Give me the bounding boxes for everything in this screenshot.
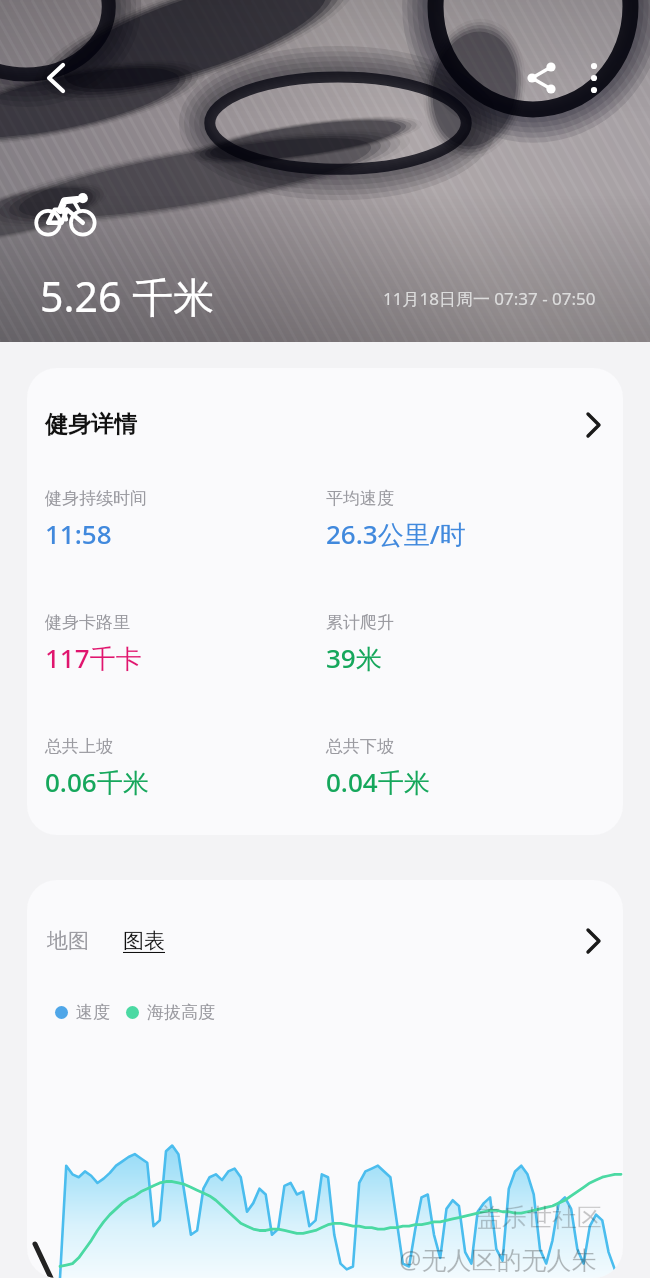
staticText: @无人区的无人朱 <box>399 1242 597 1276</box>
button[interactable]: Share <box>514 50 570 106</box>
button[interactable]: 图表 <box>121 928 167 954</box>
staticText: 11月18日周一 07:37 - 07:50 <box>383 287 596 310</box>
staticText: 盖乐世社区 <box>477 1202 602 1233</box>
staticText: 11:58 <box>45 516 112 551</box>
staticText: 39米 <box>326 640 382 676</box>
staticText: 117千卡 <box>45 640 142 676</box>
staticText: 健身持续时间 <box>45 488 147 509</box>
staticText: 总共上坡 <box>45 736 113 757</box>
button[interactable]: 地图 <box>45 928 91 954</box>
staticText: 地图 <box>47 928 89 954</box>
staticText: 平均速度 <box>326 488 394 509</box>
button[interactable]: Back <box>28 50 84 106</box>
staticText: 26.3公里/时 <box>326 516 466 552</box>
staticText: 海拔高度 <box>147 1002 215 1023</box>
staticText: 0.04千米 <box>326 764 430 800</box>
staticText: 0.06千米 <box>45 764 149 800</box>
staticText: 速度 <box>76 1002 110 1023</box>
staticText: 健身卡路里 <box>45 612 130 633</box>
button[interactable]: Open chart <box>581 929 605 953</box>
staticText: 健身详情 <box>45 410 137 439</box>
staticText: 累计爬升 <box>326 612 394 633</box>
button[interactable]: 健身详情 <box>27 368 623 835</box>
staticText: 总共下坡 <box>326 736 394 757</box>
staticText: 5.26 千米 <box>40 268 215 324</box>
button[interactable]: More options <box>566 50 622 106</box>
staticText: 图表 <box>123 928 165 954</box>
